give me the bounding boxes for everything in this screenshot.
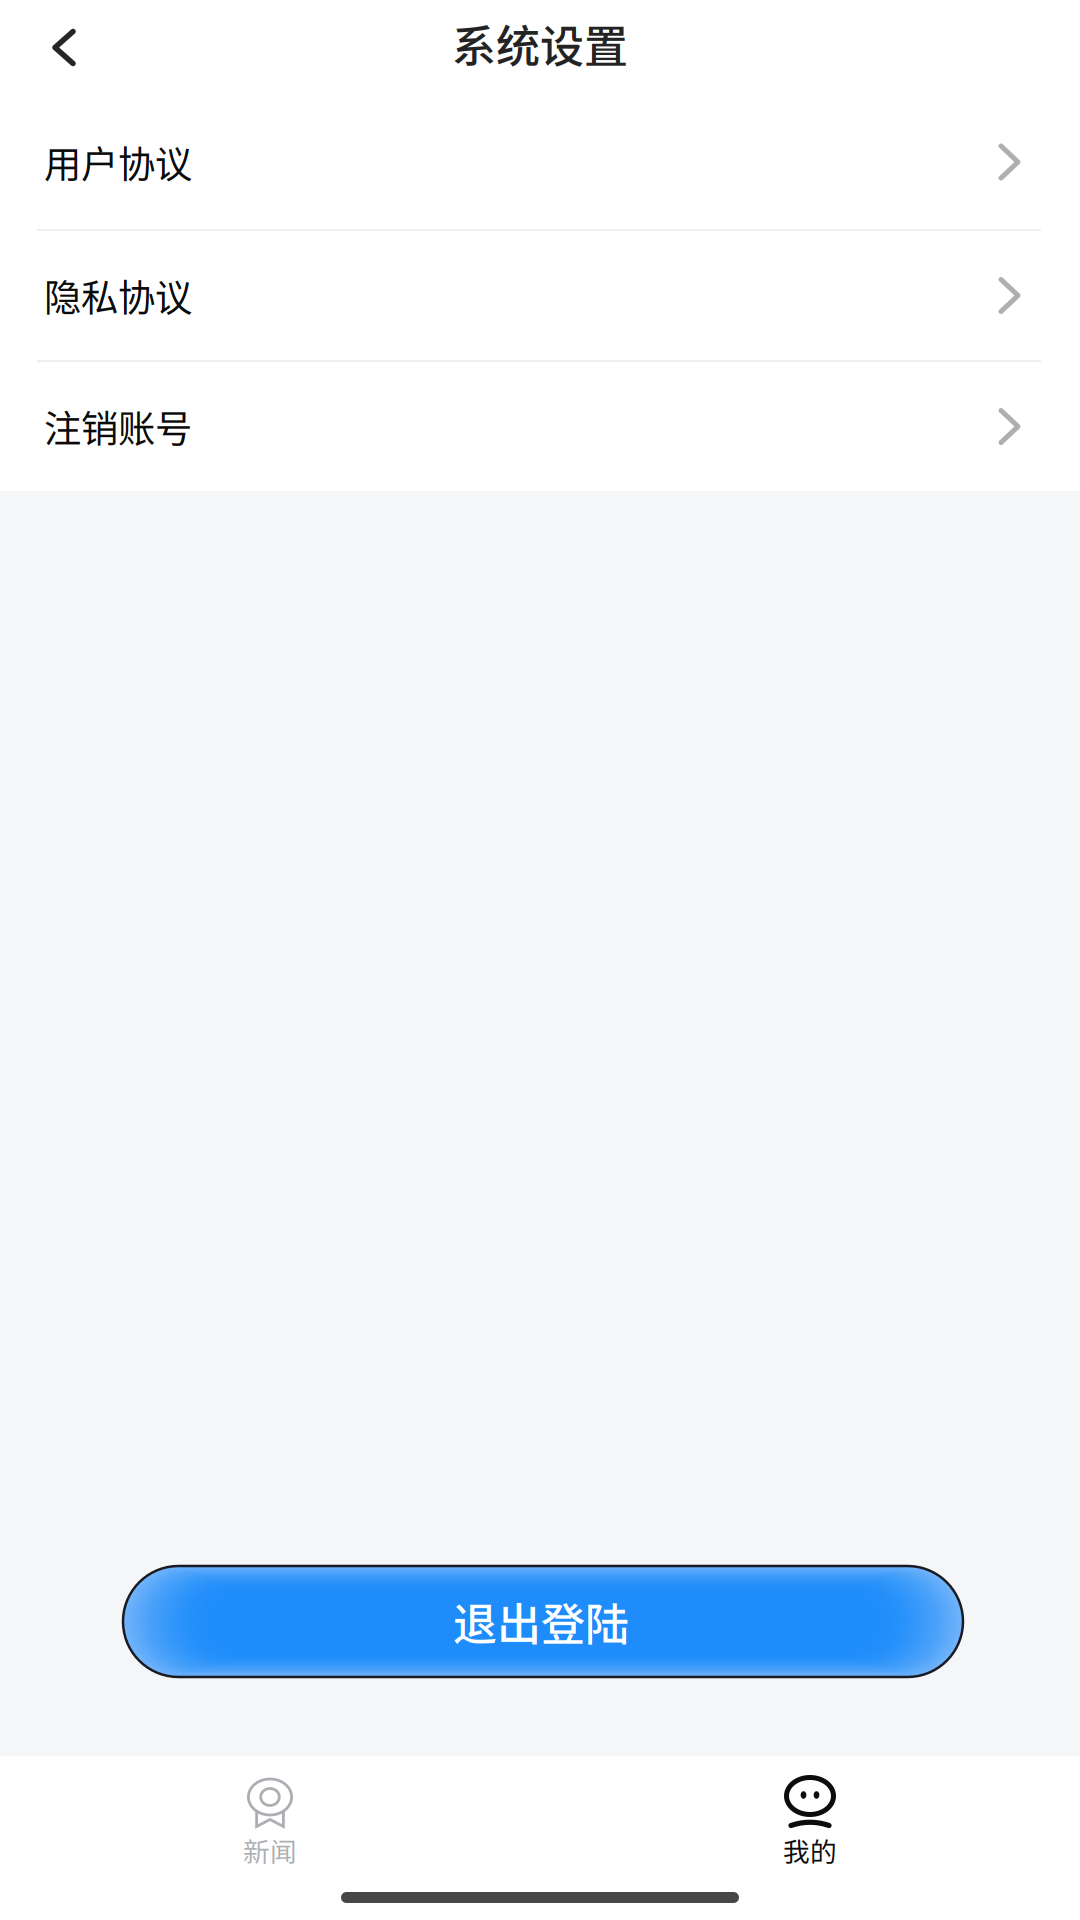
button[interactable]: 隐私协议 bbox=[0, 231, 1080, 360]
staticText: 用户协议 bbox=[44, 135, 192, 189]
button[interactable]: 退出登陆 bbox=[0, 1566, 1080, 1677]
staticText: 注销账号 bbox=[44, 399, 192, 454]
button[interactable]: 返回 bbox=[0, 0, 128, 95]
staticText: 我的 bbox=[783, 1831, 837, 1869]
button[interactable]: 注销账号 bbox=[0, 362, 1080, 491]
button[interactable]: 用户协议 bbox=[0, 95, 1080, 229]
staticText: 系统设置 bbox=[452, 12, 628, 75]
staticText: 退出登陆 bbox=[453, 1590, 629, 1653]
button[interactable]: 新闻 bbox=[160, 1756, 380, 1880]
button[interactable]: 我的 bbox=[700, 1756, 920, 1880]
staticText: 新闻 bbox=[243, 1831, 297, 1869]
staticText: 隐私协议 bbox=[44, 268, 192, 323]
